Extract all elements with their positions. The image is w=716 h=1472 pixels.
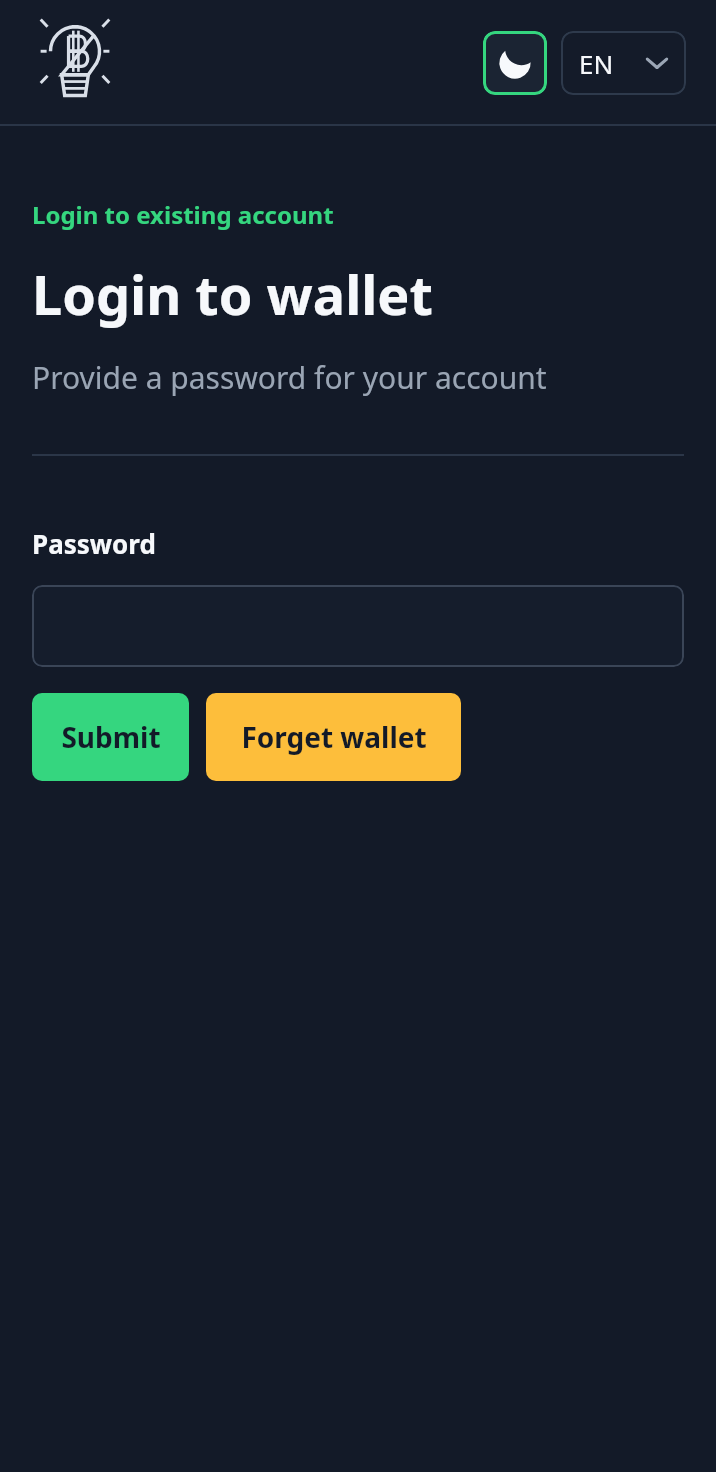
button[interactable]: Password input — [32, 585, 684, 667]
staticText: Login to existing account — [32, 198, 334, 231]
staticText: Login to wallet — [32, 257, 434, 331]
staticText: Submit — [61, 718, 161, 756]
staticText: EN — [579, 46, 614, 81]
button[interactable]: Forget wallet — [206, 693, 461, 781]
button[interactable]: EN — [561, 31, 686, 95]
button[interactable]: Home — [32, 16, 118, 110]
staticText: Provide a password for your account — [32, 357, 547, 398]
button[interactable]: Submit — [32, 693, 189, 781]
staticText: Password — [32, 526, 156, 561]
button[interactable]: Toggle dark mode — [483, 31, 547, 95]
staticText: Forget wallet — [241, 718, 427, 756]
